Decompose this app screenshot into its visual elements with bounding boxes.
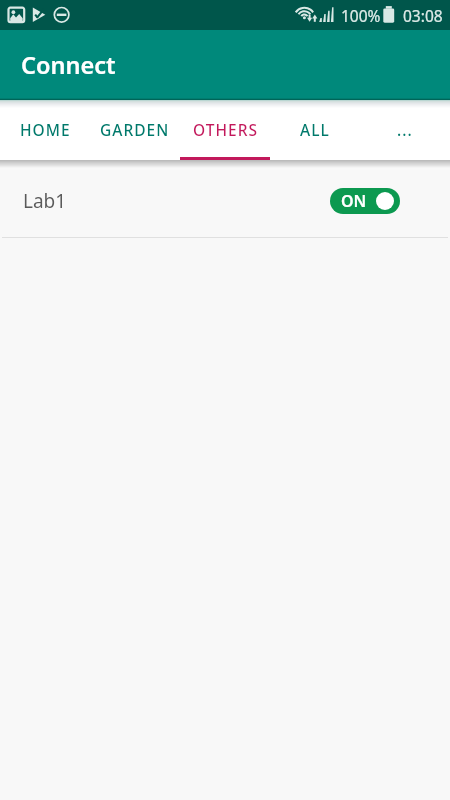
staticText: ON bbox=[341, 190, 367, 212]
staticText: Connect bbox=[21, 49, 116, 81]
staticText: 100% bbox=[341, 5, 381, 26]
staticText: 03:08 bbox=[403, 5, 443, 26]
staticText: OTHERS bbox=[193, 119, 258, 140]
button[interactable]: OTHERS bbox=[180, 100, 270, 160]
button[interactable]: Toggle Lab1 on or off bbox=[330, 188, 400, 214]
staticText: Lab1 bbox=[23, 188, 67, 214]
button[interactable]: ... bbox=[360, 100, 450, 160]
staticText: HOME bbox=[20, 119, 71, 140]
staticText: GARDEN bbox=[100, 119, 170, 140]
button[interactable]: HOME bbox=[0, 100, 90, 160]
staticText: ... bbox=[397, 119, 413, 140]
button[interactable]: ALL bbox=[270, 100, 360, 160]
staticText: ALL bbox=[300, 119, 330, 140]
button[interactable]: Lab1 bbox=[0, 160, 450, 237]
button[interactable]: GARDEN bbox=[90, 100, 180, 160]
